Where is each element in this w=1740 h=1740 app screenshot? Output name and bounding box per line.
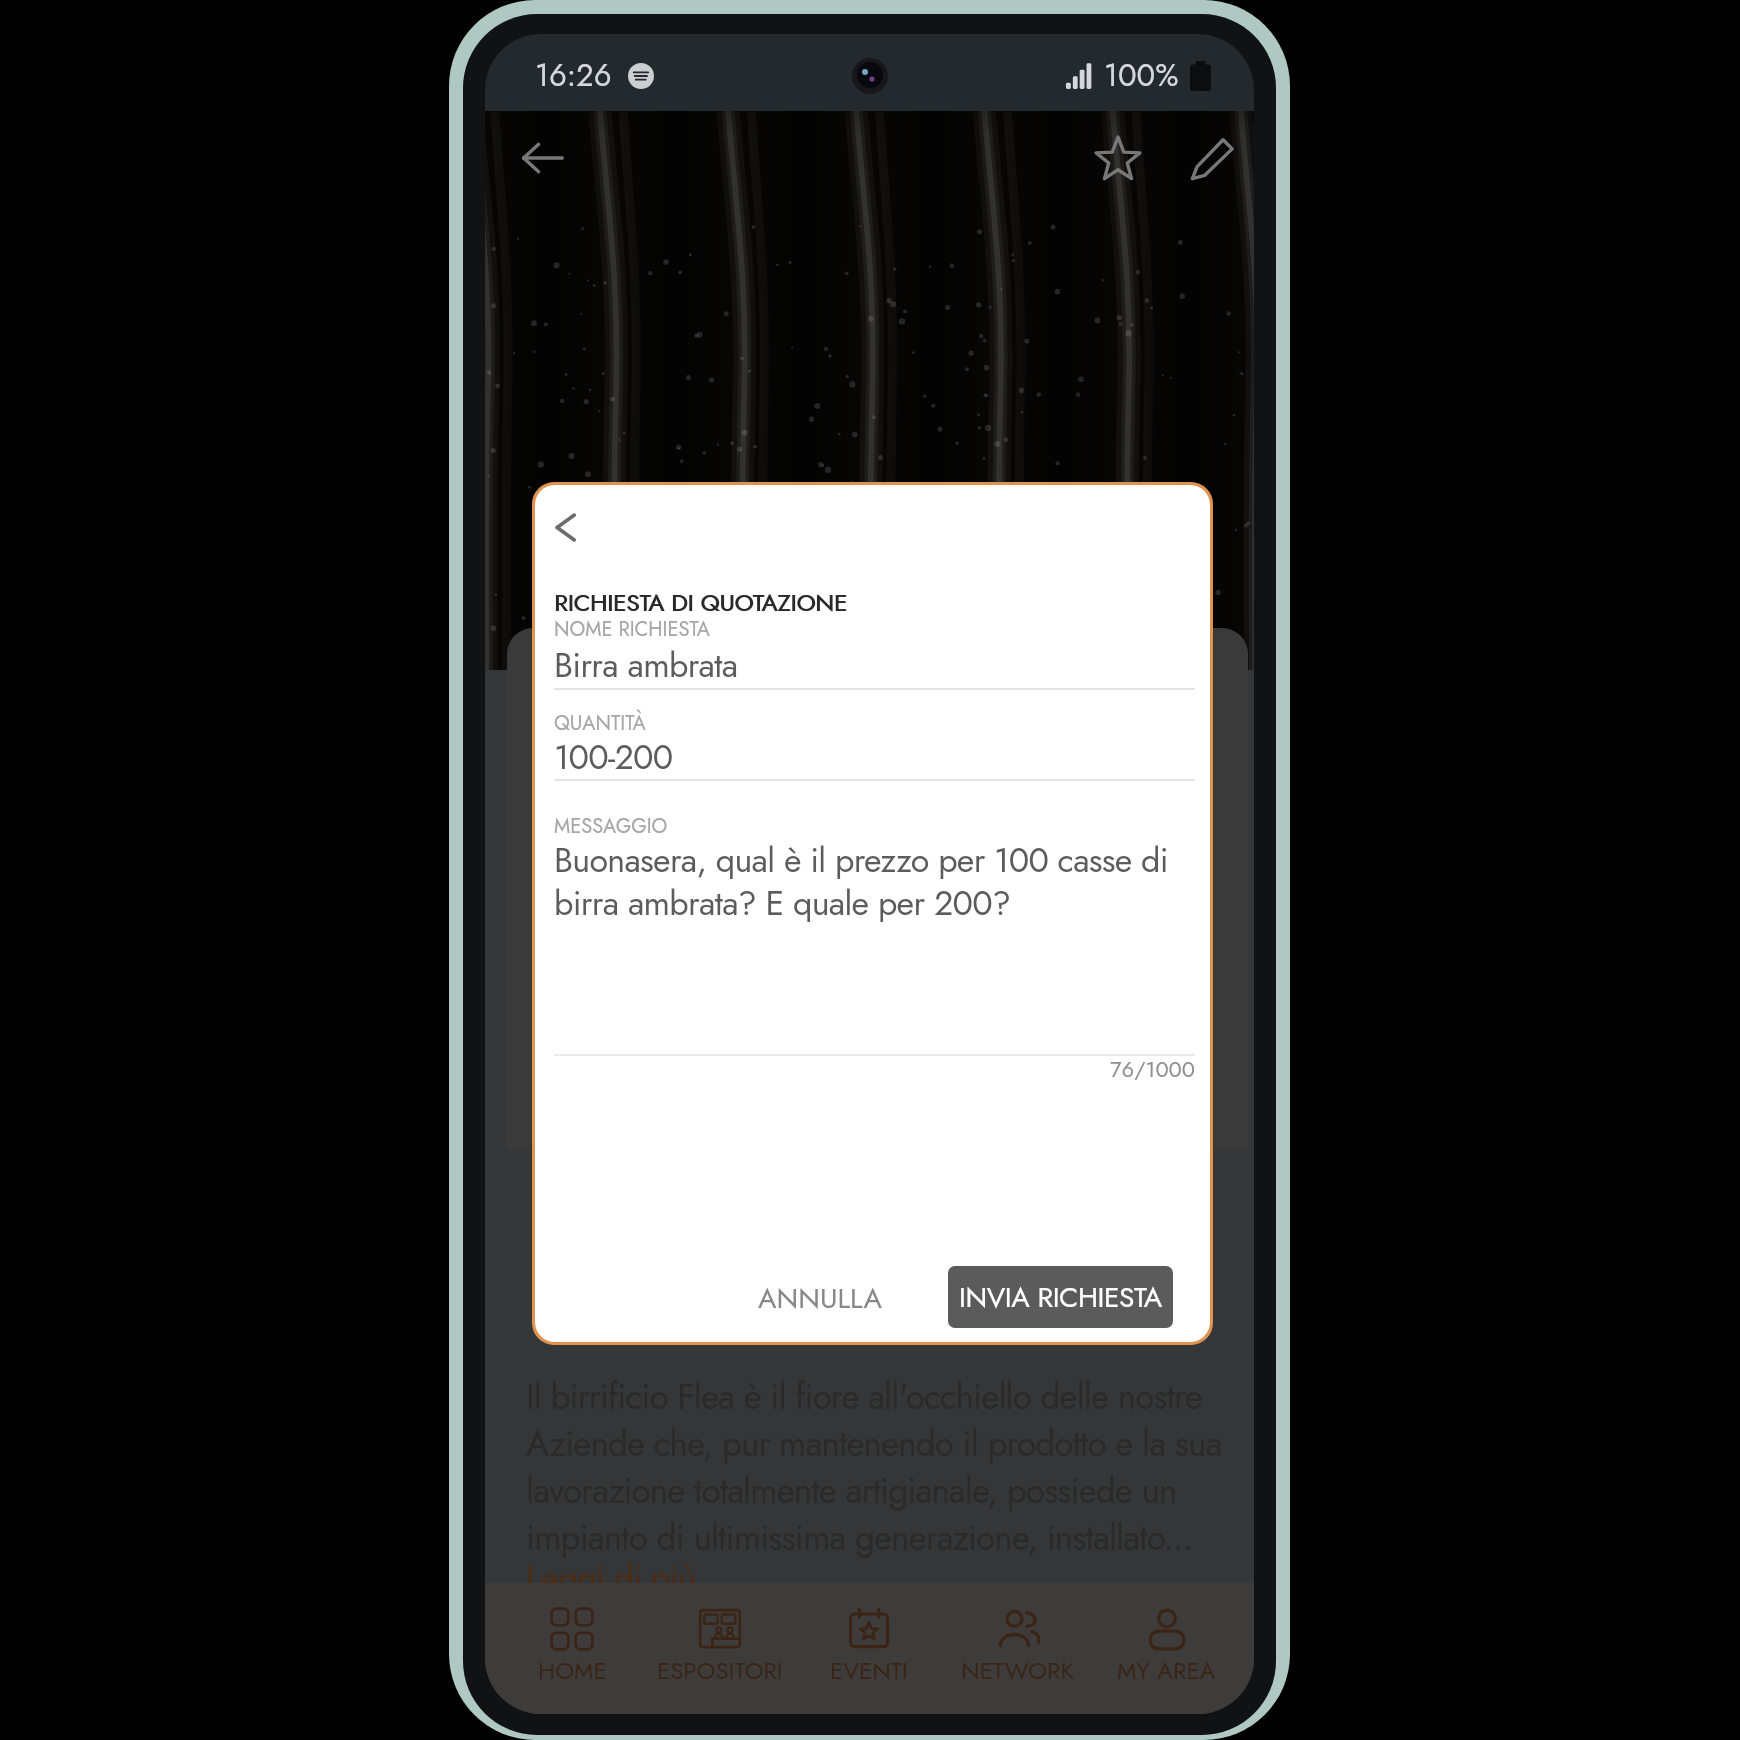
button[interactable]: ESPOSITORI xyxy=(646,1583,794,1714)
staticText: NOME RICHIESTA xyxy=(554,615,710,644)
staticText: Birra ambrata xyxy=(554,641,738,690)
staticText: Il birrificio Flea è il fiore all'occhie… xyxy=(526,1372,1202,1423)
button[interactable]: Favourite xyxy=(1079,119,1157,197)
staticText: Leggi di più xyxy=(526,1554,696,1605)
button[interactable]: Back xyxy=(535,495,597,559)
staticText: RICHIESTA DI QUOTAZIONE xyxy=(555,585,848,620)
staticText: ESPOSITORI xyxy=(657,1653,783,1688)
button[interactable]: ANNULLA xyxy=(742,1268,898,1328)
staticText: 100-200 xyxy=(554,733,673,782)
staticText: 100% xyxy=(1104,53,1179,98)
staticText: 76/1000 xyxy=(554,1053,1195,1085)
staticText: impianto di ultimissima generazione, ins… xyxy=(526,1513,1192,1564)
staticText: Aziende che, pur mantenendo il prodotto … xyxy=(526,1419,1222,1470)
staticText: NETWORK xyxy=(961,1653,1075,1688)
button[interactable]: MY AREA xyxy=(1092,1583,1241,1714)
staticText: ANNULLA xyxy=(758,1278,882,1318)
button[interactable]: EVENTI xyxy=(794,1583,943,1714)
button[interactable]: Leggi di più xyxy=(526,1554,696,1605)
button[interactable]: NETWORK xyxy=(943,1583,1092,1714)
staticText: EVENTI xyxy=(830,1653,908,1688)
staticText: 16:26 xyxy=(535,53,612,98)
staticText: MY AREA xyxy=(1117,1653,1216,1688)
button[interactable]: HOME xyxy=(498,1583,646,1714)
staticText: RICHIESTA DI QUOTAZIONE xyxy=(554,585,847,620)
button[interactable]: Edit xyxy=(1174,119,1252,197)
staticText: birra ambrata? E quale per 200? xyxy=(554,879,1011,928)
button[interactable]: INVIA RICHIESTA xyxy=(948,1266,1173,1328)
staticText: MESSAGGIO xyxy=(554,812,668,841)
staticText: INVIA RICHIESTA xyxy=(959,1277,1162,1317)
staticText: Buonasera, qual è il prezzo per 100 cass… xyxy=(554,836,1168,885)
staticText: HOME xyxy=(538,1653,607,1688)
staticText: lavorazione totalmente artigianale, poss… xyxy=(526,1466,1177,1517)
staticText: QUANTITÀ xyxy=(554,709,646,738)
button[interactable]: Back xyxy=(504,119,582,197)
